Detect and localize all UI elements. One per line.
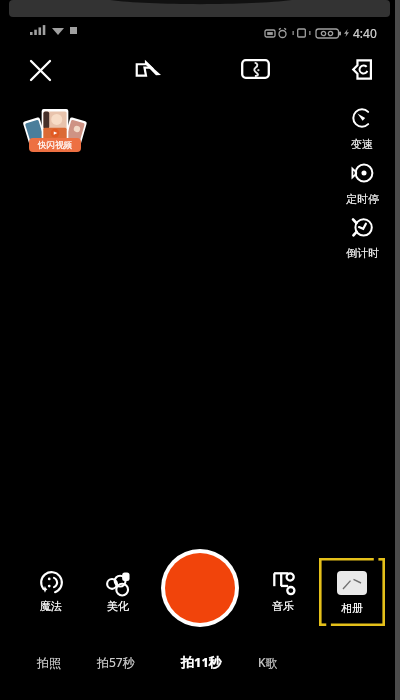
button[interactable]: 音乐 — [257, 571, 309, 613]
staticText: 倒计时 — [346, 246, 379, 260]
button[interactable]: Close — [21, 51, 59, 89]
button[interactable]: Flash video — [26, 108, 84, 152]
button[interactable]: Record — [165, 553, 235, 623]
button[interactable]: 美化 — [92, 571, 144, 613]
button[interactable]: 倒计时 — [335, 217, 389, 260]
button[interactable]: Flash off — [129, 50, 167, 88]
staticText: 美化 — [107, 599, 129, 613]
button[interactable]: 变速 — [335, 108, 389, 151]
button[interactable]: 魔法 — [25, 571, 77, 613]
staticText: 相册 — [341, 601, 363, 615]
button[interactable]: Beauty — [236, 50, 274, 88]
staticText: 拍11秒 — [181, 653, 222, 671]
button[interactable]: 拍57秒 — [93, 649, 139, 675]
button[interactable]: Switch camera — [343, 50, 381, 88]
staticText: 拍照 — [37, 655, 61, 670]
staticText: 定时停 — [346, 192, 379, 206]
staticText: 变速 — [351, 137, 373, 151]
staticText: 音乐 — [272, 599, 294, 613]
button[interactable]: 拍11秒 — [177, 649, 225, 675]
button[interactable]: 拍照 — [33, 649, 65, 675]
staticText: 拍57秒 — [97, 654, 135, 670]
staticText: 快闪视频 — [38, 140, 72, 151]
button[interactable]: 定时停 — [335, 163, 389, 206]
staticText: K歌 — [258, 654, 278, 670]
staticText: 魔法 — [40, 599, 62, 613]
button[interactable]: Album — [319, 558, 385, 626]
button[interactable]: K歌 — [252, 649, 284, 675]
staticText: 4:40 — [353, 25, 377, 41]
